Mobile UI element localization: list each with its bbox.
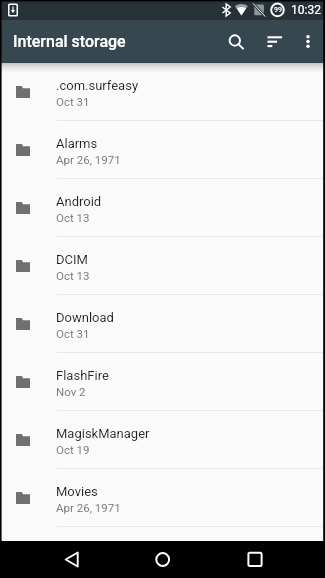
staticText: Movies	[56, 484, 98, 499]
staticText: Oct 13	[56, 211, 90, 224]
staticText: Oct 13	[56, 269, 90, 282]
button[interactable]: Download	[0, 295, 325, 353]
button[interactable]: DCIM	[0, 237, 325, 295]
staticText: DCIM	[56, 252, 88, 267]
staticText: .com.surfeasy	[56, 78, 139, 93]
staticText: Oct 19	[56, 443, 90, 456]
button[interactable]: Alarms	[0, 121, 325, 179]
staticText: Android	[56, 194, 102, 209]
button[interactable]: Back	[47, 541, 95, 578]
staticText: Apr 26, 1971	[56, 501, 121, 514]
staticText: Oct 31	[56, 95, 90, 108]
staticText: Oct 31	[56, 327, 90, 340]
button[interactable]: FlashFire	[0, 353, 325, 411]
button[interactable]: Movies	[0, 469, 325, 527]
staticText: FlashFire	[56, 368, 109, 383]
staticText: Nov 2	[56, 385, 86, 398]
button[interactable]: Home	[138, 541, 186, 578]
staticText: 10:32	[291, 3, 321, 17]
staticText: 99	[274, 6, 282, 14]
button[interactable]: Sort	[255, 20, 295, 63]
staticText: MagiskManager	[56, 426, 150, 441]
button[interactable]: .com.surfeasy	[0, 63, 325, 121]
button[interactable]: Search	[213, 20, 255, 63]
staticText: Download	[56, 310, 114, 325]
button[interactable]: Recents	[231, 541, 279, 578]
button[interactable]: More options	[293, 20, 323, 63]
staticText: Alarms	[56, 136, 98, 151]
button[interactable]: Android	[0, 179, 325, 237]
staticText: Apr 26, 1971	[56, 153, 121, 166]
button[interactable]: MagiskManager	[0, 411, 325, 469]
staticText: Internal storage	[13, 32, 126, 51]
